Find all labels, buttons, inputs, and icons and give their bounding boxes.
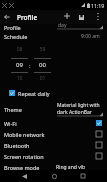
staticText: Ring and vib [56,164,86,171]
button[interactable]: Mobile network [0,128,107,139]
button[interactable]: Repeat daily [0,87,107,98]
button[interactable]: Back [18,170,30,182]
staticText: Schedule [4,33,28,40]
button[interactable]: Screen rotation [0,150,107,161]
staticText: Mobile network [4,131,45,138]
button[interactable]: Home [48,170,60,182]
staticText: 00 [34,61,51,69]
staticText: : [29,62,31,70]
button[interactable]: Navigate up [1,11,13,23]
button[interactable]: Schedule [0,31,107,41]
button[interactable]: Save [75,11,87,23]
staticText: 9:00 am [81,33,100,40]
staticText: Browse mode [4,164,40,171]
staticText: Bluetooth [4,142,30,149]
button[interactable]: Wi-Fi [0,117,107,128]
button[interactable]: More options [92,10,104,22]
staticText: 09 [11,61,28,69]
staticText: Theme [4,106,22,113]
staticText: Repeat daily [18,90,50,97]
button[interactable]: Recent apps [77,170,89,182]
staticText: 01 [34,75,51,82]
button[interactable]: Bluetooth [0,139,107,150]
staticText: Screen rotation [4,153,44,160]
button[interactable]: Add [61,10,73,22]
staticText: Wi-Fi [4,120,17,127]
staticText: Material light with dark ActionBar [57,102,100,115]
staticText: 11:19 [91,2,105,9]
staticText: day [58,22,67,29]
staticText: Profile [4,24,21,31]
button[interactable]: Profile [0,22,107,32]
staticText: Profile [17,13,38,22]
staticText: 59 [34,46,51,53]
staticText: 08 [11,46,28,53]
staticText: 10 [11,75,28,82]
button[interactable]: Browse mode [0,161,107,172]
button[interactable]: Theme [0,101,107,119]
